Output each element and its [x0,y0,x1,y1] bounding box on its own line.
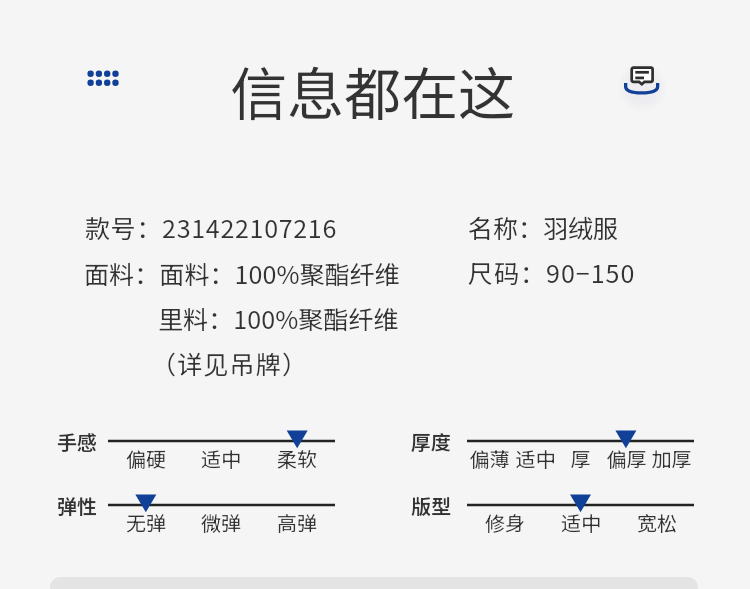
staticText: 厚 [558,444,603,470]
button[interactable]: 高弹 [259,508,335,534]
staticText: 款号：231422107216 [85,209,338,245]
button[interactable]: 偏薄 [467,444,512,470]
staticText: 名称：羽绒服 [468,209,619,245]
staticText: 尺码：90−150 [468,254,636,290]
staticText: 偏厚 [604,444,649,470]
staticText: 弹性 [57,491,97,520]
button[interactable]: 微弹 [183,508,259,534]
staticText: 修身 [467,508,543,534]
staticText: 适中 [183,444,259,470]
staticText: 宽松 [619,508,695,534]
staticText: 高弹 [259,508,335,534]
button[interactable]: 适中 [543,508,619,534]
staticText: 信息都在这 [230,49,515,132]
staticText: 适中 [543,508,619,534]
button[interactable]: 偏厚 [604,444,649,470]
staticText: 手感 [57,427,97,456]
button[interactable]: Messages [618,58,666,102]
button[interactable]: 加厚 [649,444,694,470]
button[interactable]: 适中 [183,444,259,470]
button[interactable]: 宽松 [619,508,695,534]
button[interactable]: 修身 [467,508,543,534]
staticText: 适中 [513,444,558,470]
staticText: 面料：面料：100%聚酯纤维 [84,255,401,291]
button[interactable]: 柔软 [259,444,335,470]
staticText: 偏硬 [108,444,184,470]
staticText: 无弹 [108,508,184,534]
staticText: 版型 [411,491,451,520]
button[interactable]: 适中 [513,444,558,470]
staticText: 偏薄 [467,444,512,470]
staticText: 厚度 [411,427,451,456]
staticText: 里料：100%聚酯纤维 [158,300,399,336]
staticText: 加厚 [649,444,694,470]
staticText: 柔软 [259,444,335,470]
button[interactable]: 偏硬 [108,444,184,470]
staticText: 微弹 [183,508,259,534]
button[interactable]: Menu [80,62,126,94]
staticText: （详见吊牌） [151,345,309,381]
button[interactable]: 厚 [558,444,603,470]
button[interactable]: 无弹 [108,508,184,534]
